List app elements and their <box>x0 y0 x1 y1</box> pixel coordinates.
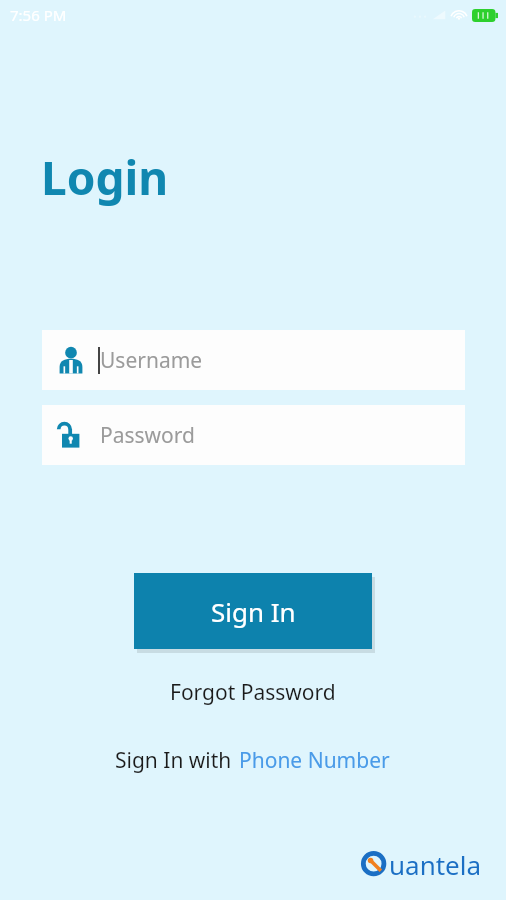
staticText: Sign In with <box>115 746 237 775</box>
button[interactable]: Phone Number <box>237 742 392 779</box>
staticText: 7:56 PM <box>10 5 67 25</box>
staticText: Phone Number <box>239 746 390 775</box>
staticText: Forgot Password <box>170 678 336 707</box>
button[interactable]: Username <box>42 330 465 390</box>
staticText: Password <box>100 421 195 450</box>
staticText: Login <box>41 146 169 209</box>
button[interactable]: Sign In <box>134 573 372 649</box>
staticText: Sign In <box>211 594 296 629</box>
button[interactable]: Forgot Password <box>158 674 348 711</box>
staticText: uantela <box>389 847 482 882</box>
staticText: Username <box>100 346 203 375</box>
button[interactable]: Password <box>42 405 465 465</box>
other: Quantela logo <box>360 847 482 882</box>
